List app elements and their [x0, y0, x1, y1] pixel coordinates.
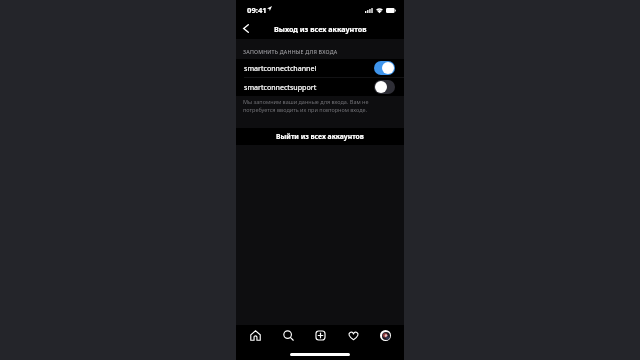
button[interactable]: Back [236, 18, 255, 39]
staticText: smartconnectchannel [244, 63, 317, 73]
staticText: Мы запомним ваши данные для входа. Вам н… [243, 98, 378, 114]
staticText: smartconnectsupport [244, 82, 317, 92]
button[interactable]: smartconnectchannel [236, 59, 404, 77]
button[interactable]: Activity [342, 325, 364, 345]
staticText: Выход из всех аккаунтов [274, 24, 367, 34]
button[interactable]: Выйти из всех аккаунтов [236, 128, 404, 145]
staticText: 09:41 [247, 5, 267, 15]
staticText: ЗАПОМНИТЬ ДАННЫЕ ДЛЯ ВХОДА [243, 48, 338, 55]
button[interactable]: smartconnectsupport [236, 78, 404, 96]
staticText: Выйти из всех аккаунтов [276, 132, 364, 141]
button[interactable]: Profile [374, 325, 396, 345]
button[interactable]: Home [244, 325, 266, 345]
button[interactable]: Create [309, 325, 331, 345]
button[interactable]: Search [277, 325, 299, 345]
